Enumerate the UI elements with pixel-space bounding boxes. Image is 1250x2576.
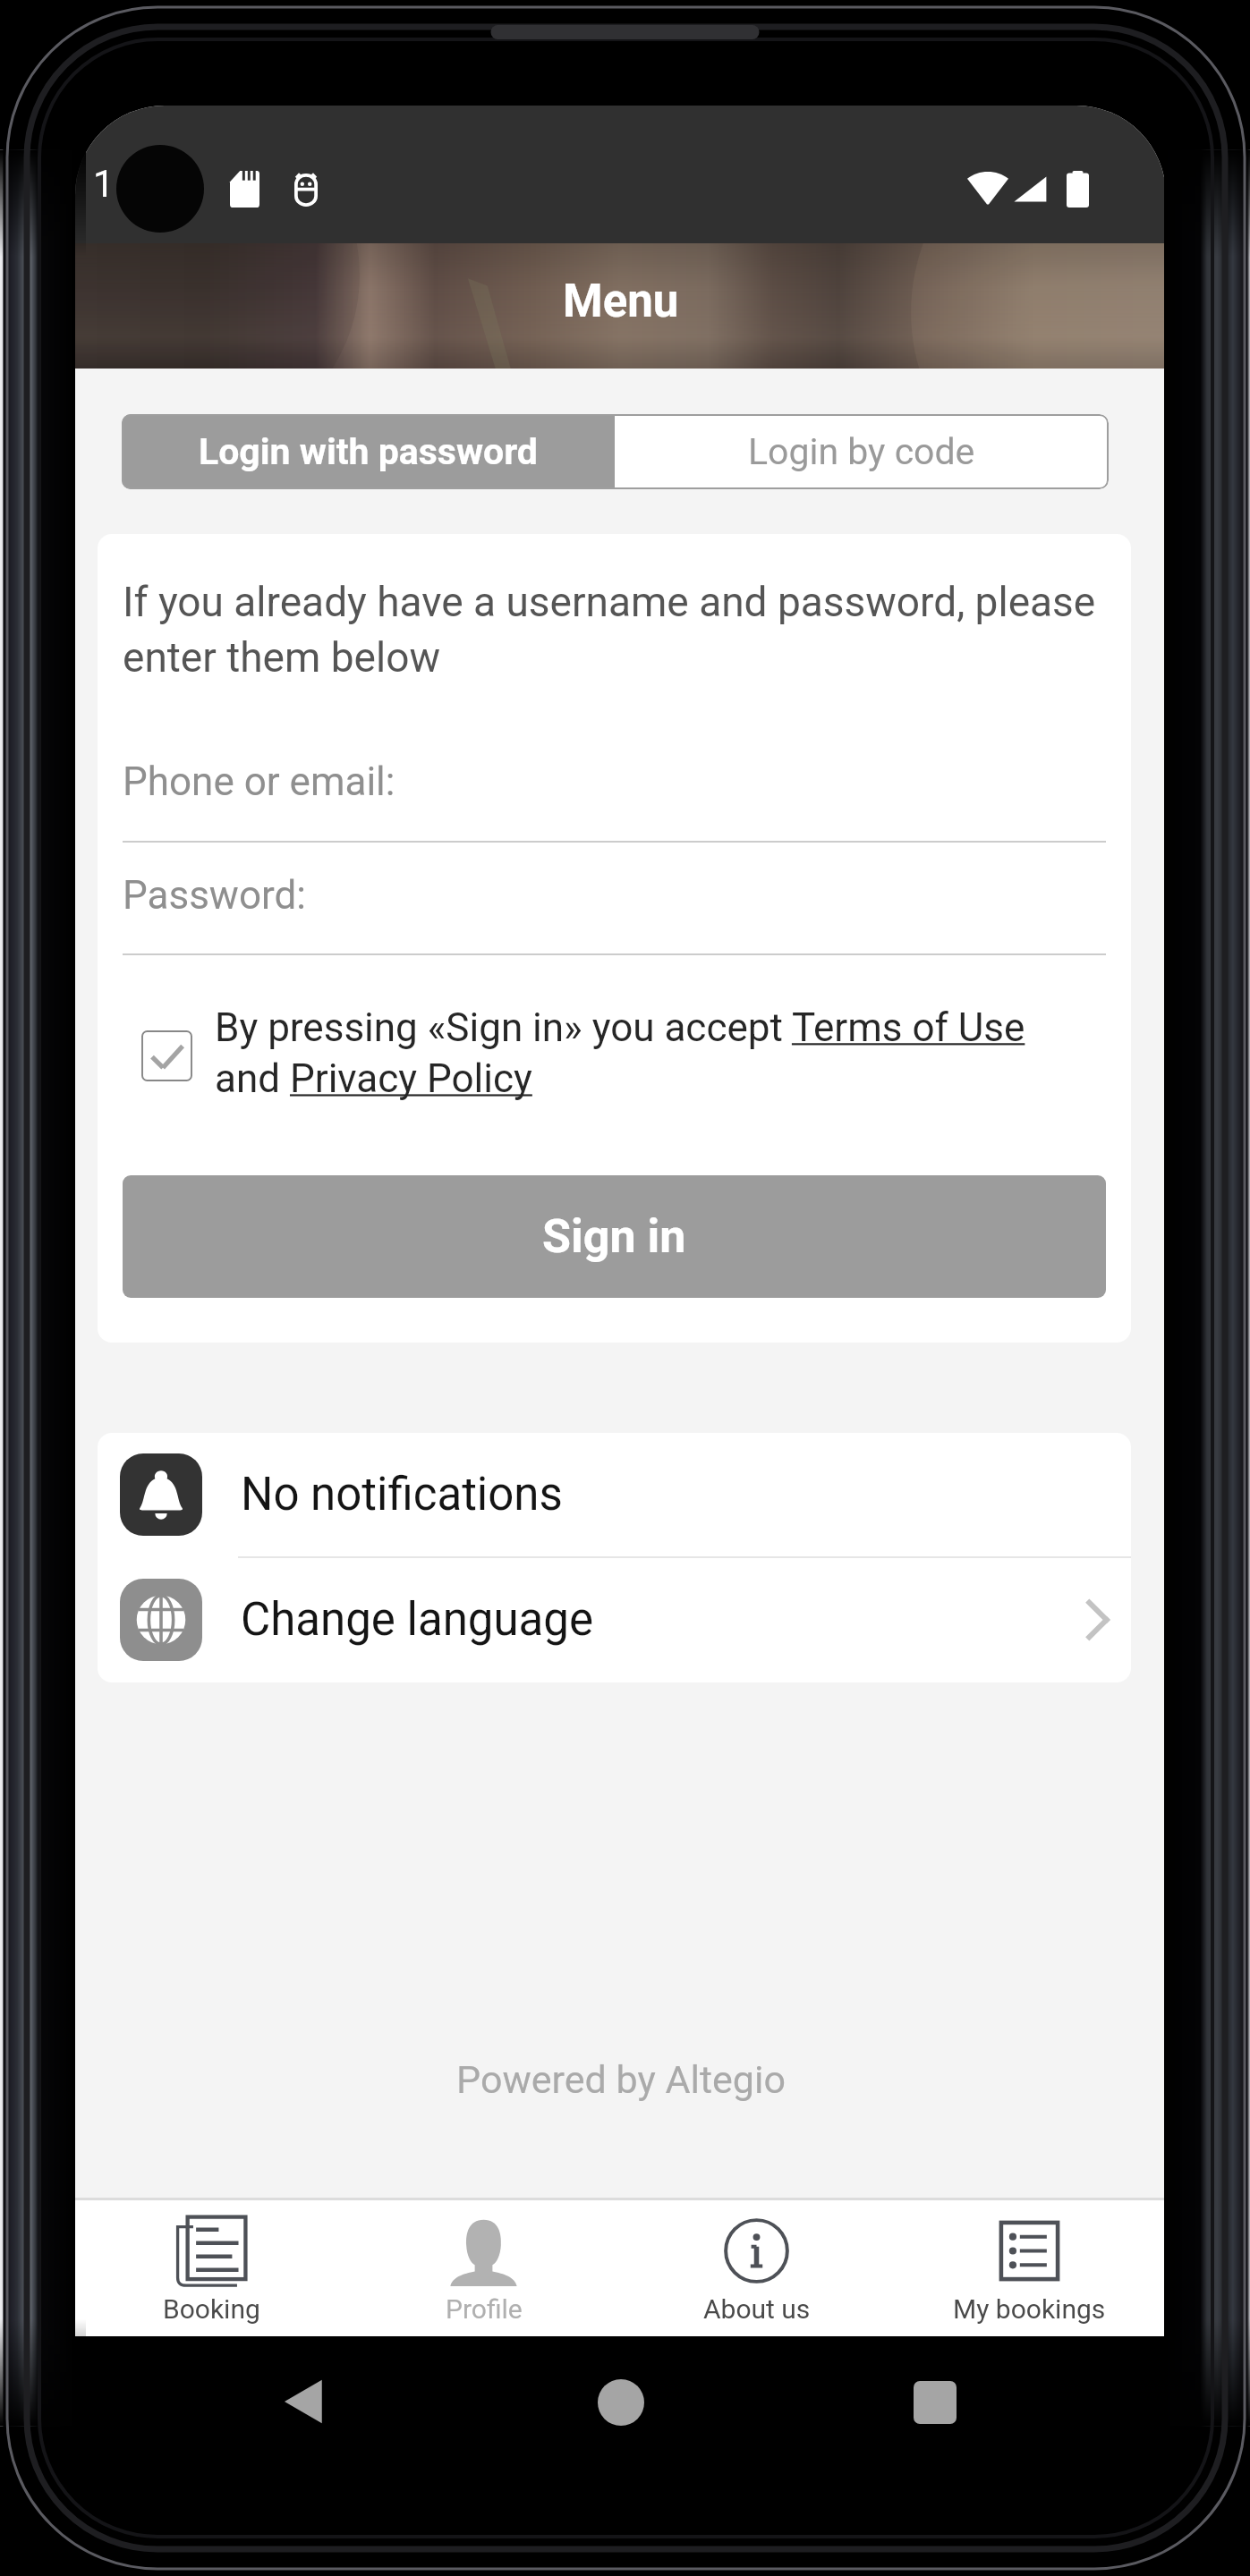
staticText: If you already have a username and passw… [123, 578, 1106, 682]
staticText: By pressing «Sign in» you accept Terms o… [215, 1004, 1025, 1102]
other: My bookings [994, 2216, 1065, 2286]
button[interactable]: Booking [75, 2200, 347, 2336]
staticText: Login with password [199, 430, 538, 473]
staticText: My bookings [953, 2293, 1106, 2325]
button[interactable]: No notifications [98, 1433, 1131, 1556]
other: Profile [448, 2216, 519, 2286]
staticText: Profile [446, 2293, 523, 2325]
button[interactable]: Recents [914, 2381, 957, 2424]
other: Open [1085, 1600, 1110, 1640]
button[interactable]: Change language [98, 1558, 1131, 1682]
staticText: Change language [241, 1593, 594, 1647]
button[interactable]: Login by code [615, 414, 1109, 489]
button[interactable]: Home [598, 2379, 644, 2426]
button[interactable]: Sign in [123, 1175, 1106, 1298]
other: Booking [176, 2216, 247, 2286]
button[interactable]: Profile [347, 2200, 620, 2336]
staticText: Phone or email: [123, 758, 395, 805]
staticText: About us [703, 2293, 811, 2325]
staticText: Login by code [748, 430, 975, 473]
staticText: 1 [93, 162, 115, 206]
staticText: Password: [123, 872, 307, 919]
staticText: Menu [563, 275, 679, 328]
button[interactable]: By pressing «Sign in» you accept Terms o… [123, 1004, 1106, 1102]
button[interactable]: My bookings [893, 2200, 1166, 2336]
staticText: No notifications [241, 1468, 563, 1521]
button[interactable]: Login with password [122, 414, 615, 489]
staticText: Booking [163, 2293, 260, 2325]
other: About us [721, 2216, 792, 2286]
staticText: Powered by Altegio [456, 2057, 786, 2102]
staticText: Sign in [542, 1209, 686, 1264]
button[interactable]: Back [278, 2376, 330, 2428]
button[interactable]: About us [620, 2200, 893, 2336]
